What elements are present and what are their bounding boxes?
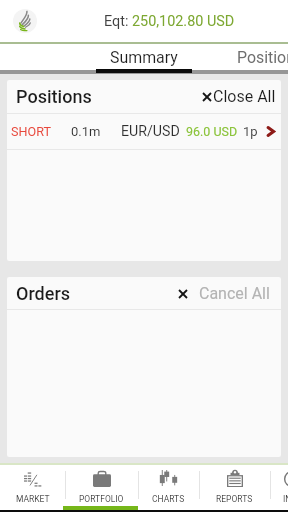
staticText: Cancel All <box>199 284 270 303</box>
staticText: REPORTS <box>216 494 253 504</box>
staticText: 250,102.80 USD <box>132 13 235 30</box>
button[interactable]: Cancel All <box>175 284 281 303</box>
button[interactable]: MARKET <box>0 465 65 506</box>
button[interactable]: Summary <box>96 44 192 70</box>
staticText: Eqt: <box>104 13 132 30</box>
button[interactable]: Positions <box>192 44 288 70</box>
staticText: Summary <box>110 48 178 67</box>
staticText: Close All <box>213 87 276 106</box>
staticText: Positions <box>16 86 92 107</box>
staticText: EUR/USD <box>121 123 180 140</box>
button[interactable]: SHORT <box>7 114 281 149</box>
staticText: Orders <box>16 283 71 304</box>
staticText: 0.1m <box>71 124 101 139</box>
staticText: SHORT <box>11 124 51 139</box>
staticText: MARKET <box>16 494 50 504</box>
staticText: PORTFOLIO <box>79 494 124 504</box>
button[interactable]: CHARTS <box>138 465 199 506</box>
button[interactable]: INFO <box>270 465 288 506</box>
button[interactable]: Open navigation menu <box>13 9 37 33</box>
button[interactable]: PORTFOLIO <box>65 465 138 506</box>
staticText: INFO <box>283 494 288 504</box>
staticText: 96.0 USD <box>186 124 238 139</box>
staticText: 1p <box>243 124 258 139</box>
staticText: Positions <box>237 48 288 67</box>
button[interactable]: Close All <box>199 87 281 106</box>
staticText: CHARTS <box>152 494 185 504</box>
button[interactable]: REPORTS <box>199 465 270 506</box>
